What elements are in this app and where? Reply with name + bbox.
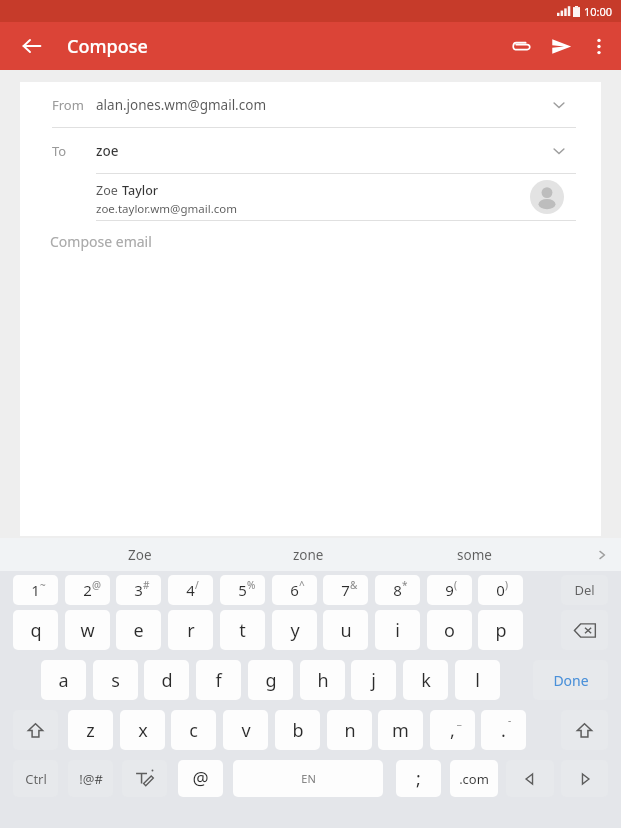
button[interactable]: Ctrl <box>13 760 58 797</box>
button[interactable]: e <box>116 610 161 650</box>
button[interactable]: . <box>481 710 526 750</box>
button[interactable]: c <box>171 710 216 750</box>
staticText: j <box>371 668 376 693</box>
button[interactable]: f <box>196 660 241 700</box>
button[interactable]: j <box>351 660 396 700</box>
button[interactable]: h <box>300 660 345 700</box>
button[interactable]: Cursor left <box>506 760 554 797</box>
button[interactable]: k <box>403 660 448 700</box>
button[interactable]: o <box>427 610 472 650</box>
staticText: @ <box>192 766 209 791</box>
button[interactable]: Del <box>561 575 608 605</box>
button[interactable]: 0 <box>478 575 523 605</box>
button[interactable]: d <box>144 660 189 700</box>
staticText: t <box>239 618 246 643</box>
staticText: o <box>444 618 455 643</box>
button[interactable]: Done <box>533 660 608 700</box>
button[interactable]: w <box>65 610 110 650</box>
button[interactable]: To <box>20 128 601 173</box>
button[interactable]: t <box>220 610 265 650</box>
button[interactable]: g <box>248 660 293 700</box>
button[interactable]: .com <box>450 760 498 797</box>
button[interactable]: More suggestions <box>589 542 615 568</box>
button[interactable]: y <box>272 610 317 650</box>
button[interactable]: u <box>323 610 368 650</box>
staticText: a <box>58 668 69 693</box>
staticText: 7 <box>341 580 350 600</box>
button[interactable]: Zoe <box>20 174 601 220</box>
button[interactable]: Compose email <box>20 221 601 261</box>
button[interactable]: !@# <box>68 760 113 797</box>
staticText: ) <box>505 578 508 592</box>
button[interactable]: EN <box>233 760 383 797</box>
button[interactable]: x <box>120 710 165 750</box>
staticText: i <box>395 618 400 643</box>
button[interactable]: b <box>275 710 320 750</box>
button[interactable]: a <box>41 660 86 700</box>
staticText: Compose email <box>50 232 152 251</box>
button[interactable]: Back <box>12 26 52 66</box>
button[interactable]: 3 <box>116 575 161 605</box>
staticText: e <box>133 618 144 643</box>
button[interactable]: n <box>327 710 372 750</box>
staticText: Compose <box>67 34 148 59</box>
button[interactable]: s <box>93 660 138 700</box>
button[interactable]: m <box>378 710 423 750</box>
button[interactable]: p <box>478 610 523 650</box>
button[interactable]: Shift <box>561 710 608 750</box>
staticText: p <box>495 618 507 643</box>
staticText: zoe <box>96 142 119 160</box>
staticText: - <box>508 713 512 727</box>
staticText: _ <box>457 713 462 727</box>
button[interactable]: 2 <box>65 575 110 605</box>
button[interactable]: l <box>455 660 500 700</box>
button[interactable]: 9 <box>427 575 472 605</box>
button[interactable]: 5 <box>220 575 265 605</box>
staticText: n <box>344 718 356 743</box>
staticText: 1 <box>31 580 40 600</box>
button[interactable]: v <box>223 710 268 750</box>
button[interactable]: Attach file <box>501 26 541 66</box>
staticText: k <box>421 668 431 693</box>
button[interactable]: r <box>168 610 213 650</box>
button[interactable]: Handwriting input <box>122 760 167 797</box>
button[interactable]: q <box>13 610 58 650</box>
staticText: ^ <box>299 578 305 592</box>
button[interactable]: z <box>68 710 113 750</box>
button[interactable]: Shift <box>13 710 58 750</box>
staticText: u <box>340 618 352 643</box>
staticText: g <box>265 668 277 693</box>
staticText: w <box>80 618 95 643</box>
staticText: 9 <box>445 580 454 600</box>
button[interactable]: ; <box>396 760 441 797</box>
button[interactable]: 8 <box>375 575 420 605</box>
button[interactable]: i <box>375 610 420 650</box>
staticText: Zoe <box>96 182 122 199</box>
button[interactable]: , <box>430 710 475 750</box>
staticText: z <box>86 718 95 743</box>
staticText: Done <box>553 671 589 690</box>
button[interactable]: More options <box>581 28 617 64</box>
staticText: ( <box>454 578 457 592</box>
staticText: m <box>392 718 409 743</box>
staticText: 4 <box>186 580 195 600</box>
staticText: y <box>290 618 300 643</box>
staticText: / <box>195 578 199 592</box>
button[interactable]: Cursor right <box>561 760 608 797</box>
staticText: c <box>189 718 198 743</box>
button[interactable]: Backspace <box>561 610 608 650</box>
button[interactable]: 4 <box>168 575 213 605</box>
staticText: Ctrl <box>25 770 47 788</box>
button[interactable]: @ <box>178 760 223 797</box>
button[interactable]: From <box>20 82 601 127</box>
button[interactable]: 6 <box>272 575 317 605</box>
staticText: Zoe <box>128 546 152 564</box>
button[interactable]: 7 <box>323 575 368 605</box>
button[interactable]: Send <box>541 26 581 66</box>
button[interactable]: 1 <box>13 575 58 605</box>
staticText: & <box>350 578 358 592</box>
staticText: @ <box>92 578 101 592</box>
staticText: To <box>52 142 67 160</box>
staticText: Del <box>574 581 595 599</box>
staticText: l <box>475 668 480 693</box>
